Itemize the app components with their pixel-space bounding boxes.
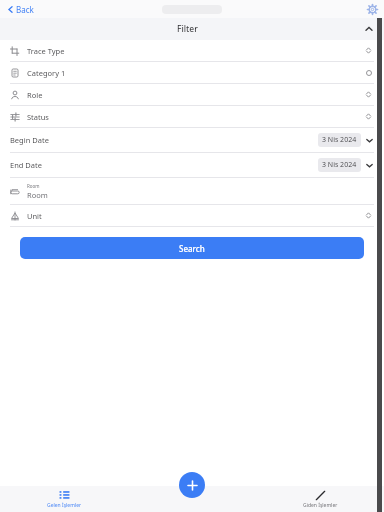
button[interactable]: Trace Type xyxy=(0,40,384,62)
staticText: Trace Type xyxy=(27,46,65,56)
button[interactable]: Begin Date xyxy=(0,128,384,153)
button[interactable]: Filter xyxy=(0,18,384,40)
staticText: Room xyxy=(27,183,40,189)
button[interactable]: Back xyxy=(4,2,37,17)
staticText: Back xyxy=(16,4,34,15)
staticText: Status xyxy=(27,112,49,122)
staticText: Category 1 xyxy=(27,68,66,78)
button[interactable]: Room xyxy=(0,178,384,205)
button[interactable]: Role xyxy=(0,84,384,106)
button[interactable]: Settings xyxy=(365,2,379,16)
staticText: 3 Nis 2024 xyxy=(322,160,357,170)
staticText: Unit xyxy=(27,211,42,221)
staticText: 3 Nis 2024 xyxy=(322,135,357,145)
staticText: Begin Date xyxy=(10,135,49,145)
button[interactable]: Category 1 xyxy=(0,62,384,84)
button[interactable]: Giden İşlemler xyxy=(256,486,384,512)
button[interactable]: Gelen İşlemler xyxy=(0,486,128,512)
button[interactable]: End Date xyxy=(0,153,384,178)
staticText: Room xyxy=(27,190,48,200)
button[interactable]: Add xyxy=(179,472,205,498)
staticText: Filter xyxy=(177,23,198,35)
button[interactable]: Search xyxy=(20,237,364,259)
staticText: Gelen İşlemler xyxy=(47,502,82,509)
staticText: Role xyxy=(27,90,43,100)
staticText: Search xyxy=(179,243,205,254)
staticText: Giden İşlemler xyxy=(303,502,338,509)
staticText: End Date xyxy=(10,160,42,170)
button[interactable]: Unit xyxy=(0,205,384,227)
button[interactable]: Status xyxy=(0,106,384,128)
